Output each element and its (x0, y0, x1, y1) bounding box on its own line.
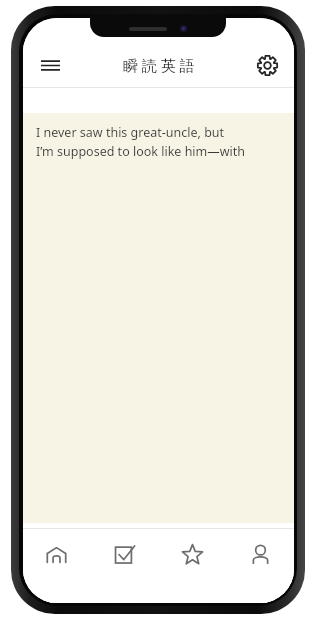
button[interactable]: I never saw this great-uncle, but (23, 113, 294, 523)
button[interactable]: Profile (226, 529, 294, 579)
button[interactable]: Settings (246, 44, 288, 86)
button[interactable]: Tasks (90, 529, 158, 579)
button[interactable]: Home (23, 529, 90, 579)
button[interactable]: Menu (29, 44, 71, 86)
staticText: I never saw this great-uncle, but (36, 124, 225, 141)
staticText: 瞬 読 英 語 (123, 55, 195, 75)
staticText: I’m supposed to look like him—with (36, 143, 246, 160)
button[interactable]: Favorites (158, 529, 226, 579)
